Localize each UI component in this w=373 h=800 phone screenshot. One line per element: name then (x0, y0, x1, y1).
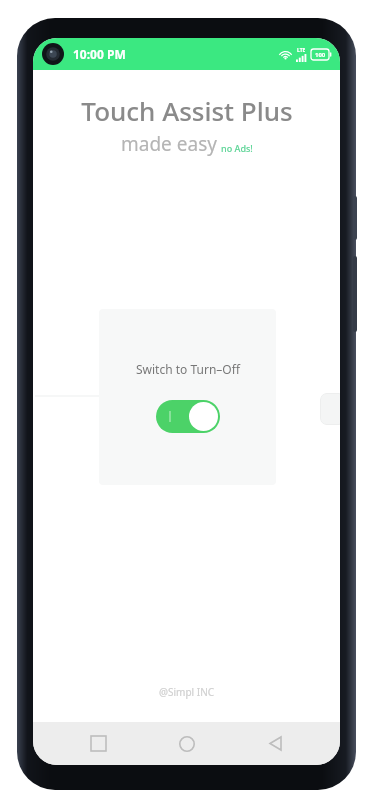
staticText: Switch to Turn–Off (136, 361, 240, 377)
staticText: 10:00 PM (73, 46, 126, 62)
staticText: no Ads! (221, 142, 253, 154)
button[interactable]: Turn off touch assist (156, 400, 220, 433)
button[interactable]: Recent apps (74, 722, 122, 765)
button[interactable]: Back (251, 722, 299, 765)
staticText: Touch Assist Plus (81, 93, 293, 128)
staticText: @Simpl INC (159, 685, 215, 699)
button[interactable]: Home (163, 722, 211, 765)
staticText: made easy (121, 131, 217, 157)
staticText: LTE (297, 47, 306, 54)
staticText: 100 (315, 51, 326, 59)
